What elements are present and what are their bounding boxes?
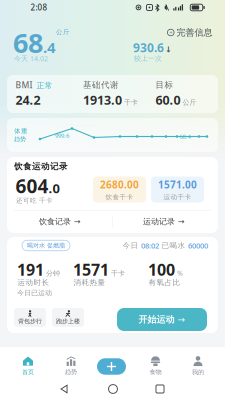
staticText: 68 [13, 24, 43, 61]
staticText: 191 [17, 259, 44, 280]
staticText: 运动记录 [143, 216, 175, 227]
staticText: 今日已运动 [17, 289, 52, 297]
staticText: 完善信息 [176, 27, 212, 38]
staticText: 930.6 [133, 39, 164, 56]
button[interactable]: 饮食记录 [14, 212, 106, 230]
staticText: 首页 [22, 368, 34, 376]
staticText: 今天 14.02 [14, 54, 48, 63]
staticText: 2680.00 [100, 178, 139, 191]
staticText: 跑步上楼 [56, 317, 80, 325]
button[interactable]: 运动记录 [118, 212, 210, 230]
staticText: 体重 [14, 127, 28, 135]
staticText: 开始运动 [138, 314, 174, 325]
staticText: 饮食记录 [39, 216, 71, 227]
staticText: 运动时长 [17, 278, 49, 287]
staticText: 60.0 [155, 91, 180, 108]
staticText: → [74, 217, 81, 226]
button[interactable]: 食物 [149, 356, 161, 376]
staticText: 1571.00 [158, 178, 197, 191]
staticText: 1913.0 [83, 91, 122, 108]
staticText: 千卡 [111, 269, 125, 278]
button[interactable]: 背包步行 [14, 308, 46, 327]
staticText: 消耗热量 [73, 278, 105, 287]
button[interactable]: 喝对水 促燃脂 [22, 240, 70, 251]
staticText: 已喝水 [161, 241, 185, 250]
staticText: → [178, 217, 185, 226]
button[interactable]: 趋势 [65, 356, 77, 376]
button[interactable]: 添加记录 [97, 358, 126, 375]
staticText: 公斤 [56, 28, 70, 36]
button[interactable]: 首页 [22, 356, 34, 376]
staticText: 背包步行 [18, 317, 42, 325]
staticText: BMI [15, 79, 32, 91]
button[interactable]: 主屏幕 [109, 385, 117, 393]
staticText: 我的 [192, 368, 204, 376]
staticText: 正常 [36, 81, 52, 91]
button[interactable]: 我的 [192, 356, 204, 376]
staticText: 饮食运动记录 [14, 161, 68, 172]
button[interactable]: + [167, 27, 212, 38]
staticText: 基础代谢 [83, 80, 119, 90]
staticText: 2:08 [30, 2, 47, 13]
staticText: 较上一次 [134, 54, 162, 63]
staticText: 公斤 [182, 98, 196, 107]
staticText: .0 [48, 179, 59, 197]
staticText: 还可吃 千卡 [16, 196, 53, 205]
staticText: → [177, 314, 185, 325]
staticText: 食物 [149, 368, 161, 376]
staticText: 08:02 [141, 240, 159, 251]
button[interactable]: 开始运动 [117, 308, 207, 331]
staticText: % [177, 268, 183, 278]
staticText: .4 [43, 37, 56, 57]
staticText: 1571 [73, 259, 109, 280]
staticText: 喝对水 促燃脂 [27, 242, 65, 249]
staticText: 饮食千卡 [105, 193, 133, 201]
staticText: 趋势 [65, 368, 77, 376]
staticText: ↓ [165, 45, 172, 54]
button[interactable]: 返回 [60, 385, 68, 393]
staticText: 分钟 [46, 269, 60, 278]
staticText: 趋势 [14, 135, 26, 143]
staticText: 60000 [188, 240, 208, 251]
staticText: 有氧占比 [148, 278, 180, 287]
button[interactable]: 跑步上楼 [52, 308, 84, 327]
staticText: 100 [148, 259, 175, 280]
staticText: 24.2 [15, 91, 40, 108]
staticText: + [169, 28, 172, 37]
staticText: 999.6 [55, 131, 69, 140]
button[interactable]: 最近任务 [156, 385, 164, 393]
staticText: 千卡 [124, 98, 138, 107]
staticText: 今日 [122, 241, 138, 250]
staticText: 运动千卡 [163, 193, 191, 201]
staticText: 604 [15, 173, 48, 199]
staticText: 68.4 [179, 133, 190, 140]
staticText: 目标 [155, 80, 173, 90]
